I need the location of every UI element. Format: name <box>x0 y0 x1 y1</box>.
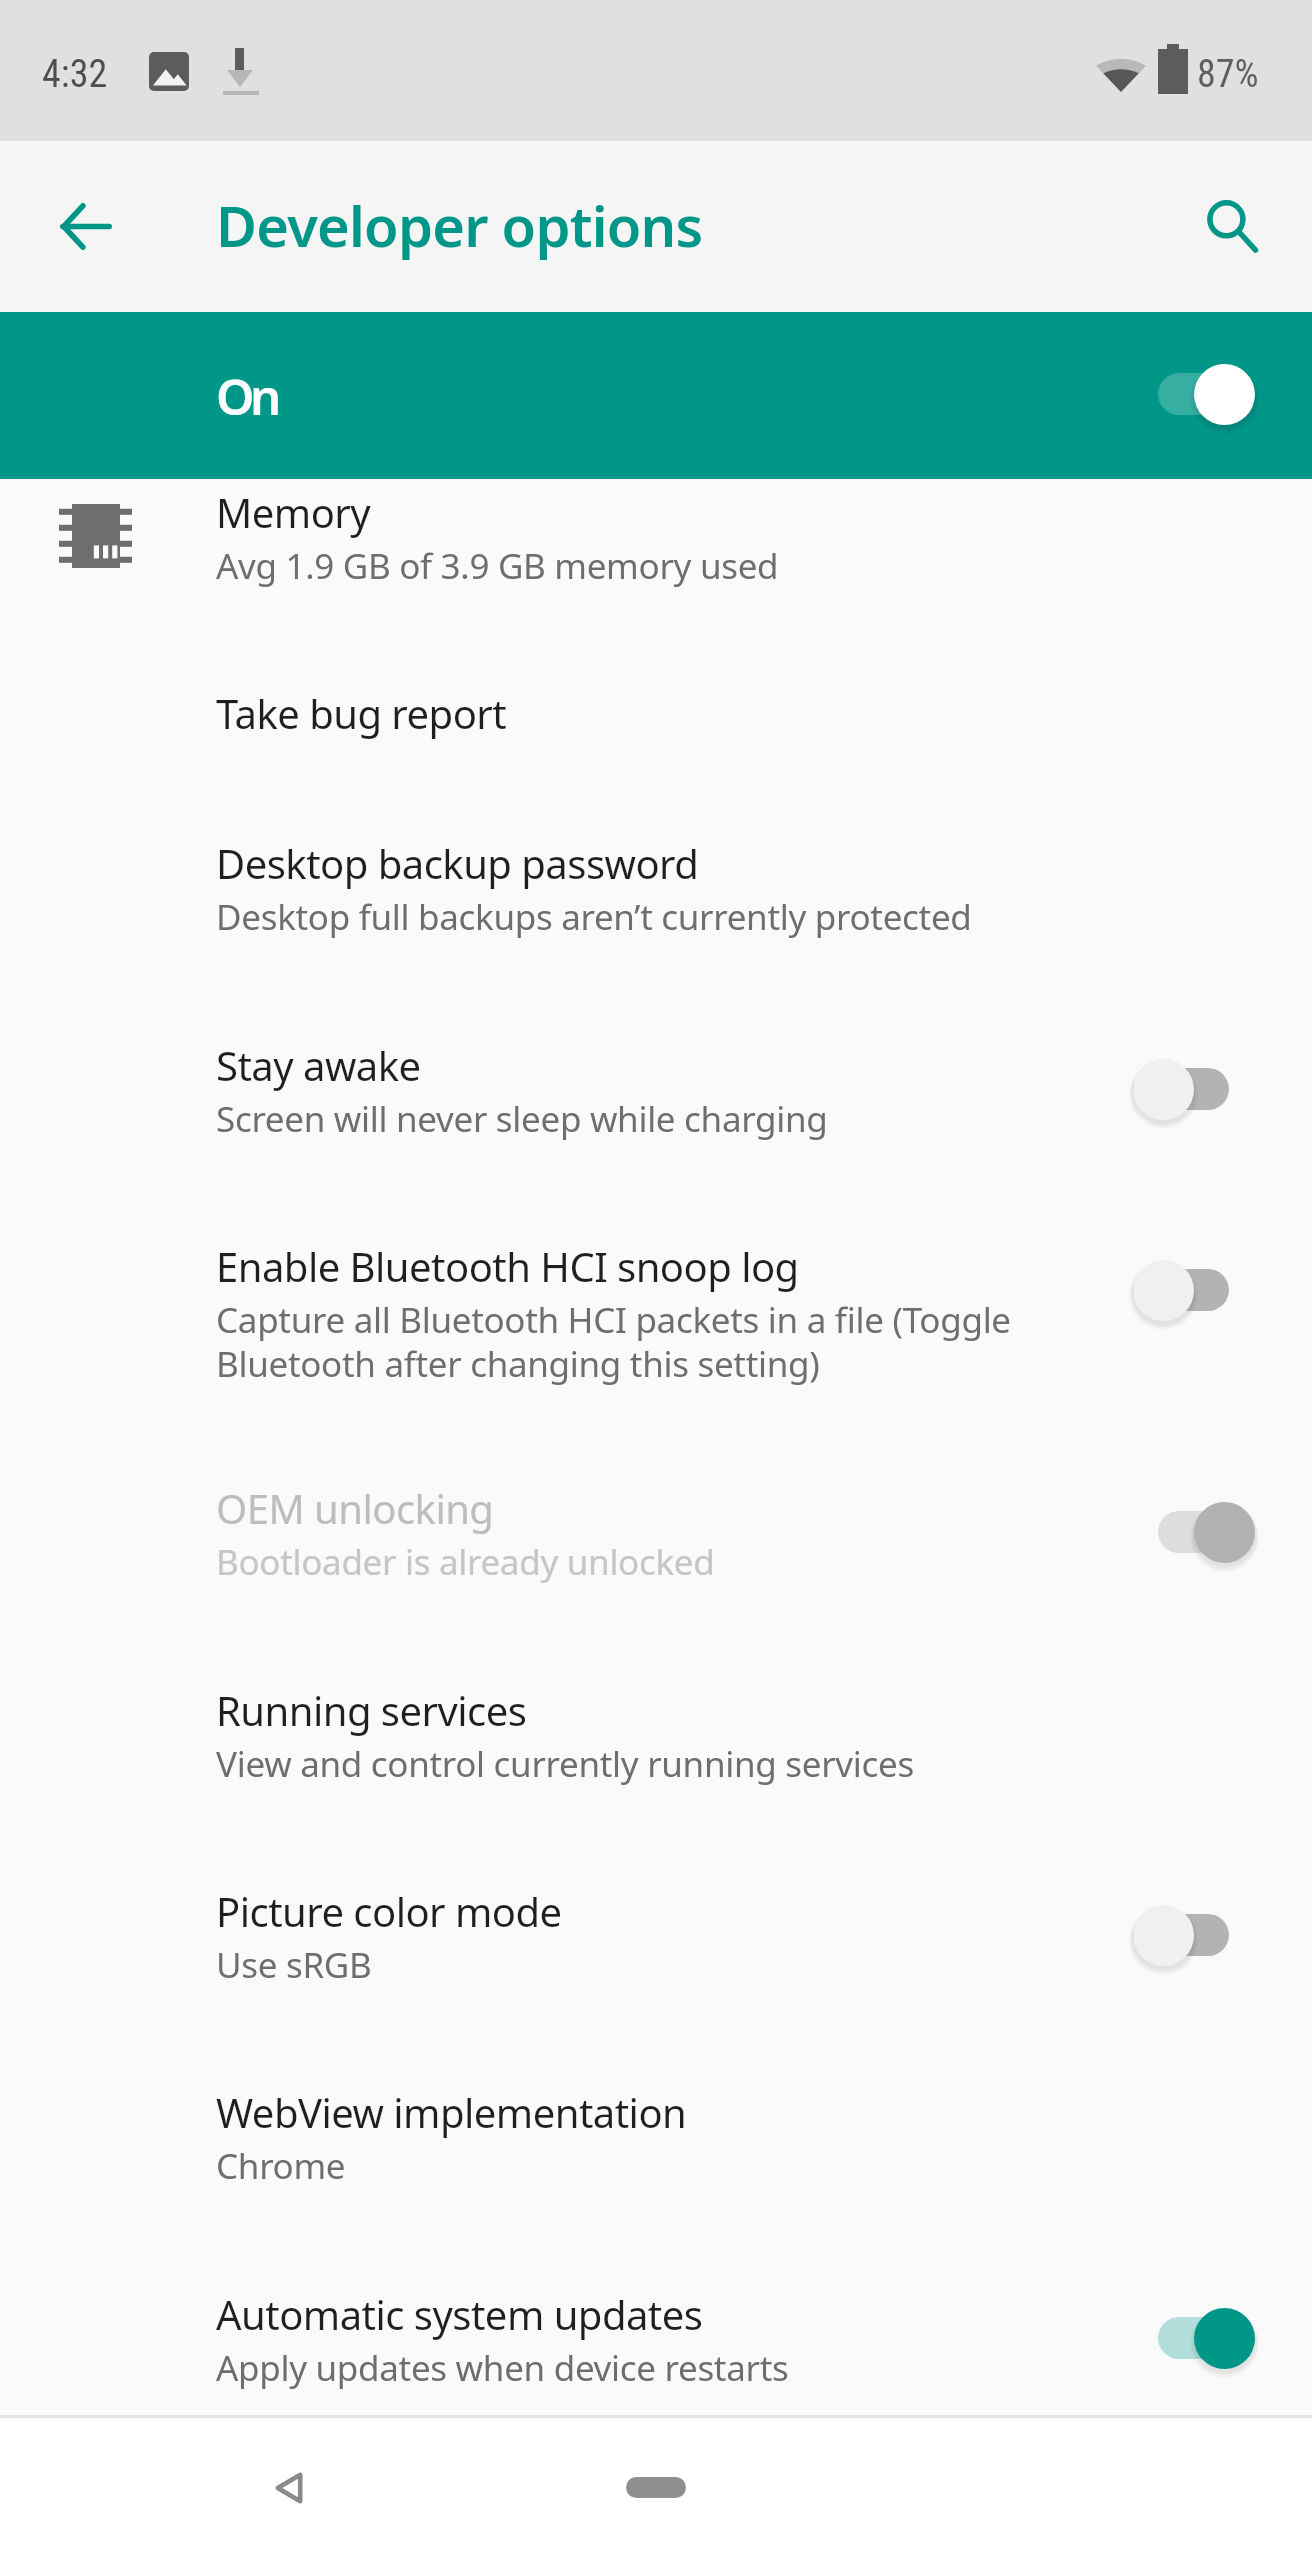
button[interactable]: Running services <box>0 1657 1312 1804</box>
staticText: Picture color mode <box>216 1884 562 1938</box>
staticText: Enable Bluetooth HCI snoop log <box>216 1239 799 1293</box>
button[interactable]: Back <box>30 170 142 282</box>
staticText: Developer options <box>216 187 703 263</box>
staticText: Avg 1.9 GB of 3.9 GB memory used <box>216 542 779 590</box>
button[interactable]: Search <box>1176 170 1288 282</box>
staticText: Memory <box>216 485 371 539</box>
button[interactable]: WebView implementation <box>0 2059 1312 2206</box>
staticText: Desktop backup password <box>216 836 699 890</box>
staticText: Automatic system updates <box>216 2287 703 2341</box>
staticText: Chrome <box>216 2142 346 2190</box>
staticText: Capture all Bluetooth HCI packets in a f… <box>216 1296 1011 1387</box>
staticText: Bootloader is already unlocked <box>216 1538 715 1586</box>
button[interactable]: OEM unlocking <box>0 1455 1312 1602</box>
staticText: Running services <box>216 1683 527 1737</box>
staticText: Take bug report <box>216 686 507 740</box>
button[interactable]: Picture color mode <box>0 1858 1312 2005</box>
button[interactable]: On <box>0 312 1312 479</box>
button[interactable]: Automatic system updates <box>0 2261 1312 2408</box>
staticText: On <box>216 363 277 430</box>
staticText: WebView implementation <box>216 2085 687 2139</box>
staticText: 4:32 <box>42 52 108 97</box>
button[interactable]: Stay awake <box>0 1012 1312 1159</box>
staticText: 87% <box>1197 52 1259 97</box>
staticText: Apply updates when device restarts <box>216 2344 789 2392</box>
staticText: View and control currently running servi… <box>216 1740 914 1788</box>
button[interactable]: Take bug report <box>0 660 1312 760</box>
button[interactable]: Memory <box>0 459 1312 606</box>
staticText: Stay awake <box>216 1038 421 1092</box>
button[interactable]: Enable Bluetooth HCI snoop log <box>0 1213 1312 1399</box>
button[interactable]: Back <box>248 2447 330 2529</box>
button[interactable]: Home <box>596 2454 716 2520</box>
staticText: Use sRGB <box>216 1941 372 1989</box>
button[interactable]: Desktop backup password <box>0 810 1312 957</box>
staticText: Screen will never sleep while charging <box>216 1095 828 1143</box>
staticText: Desktop full backups aren’t currently pr… <box>216 893 972 941</box>
staticText: OEM unlocking <box>216 1481 494 1535</box>
